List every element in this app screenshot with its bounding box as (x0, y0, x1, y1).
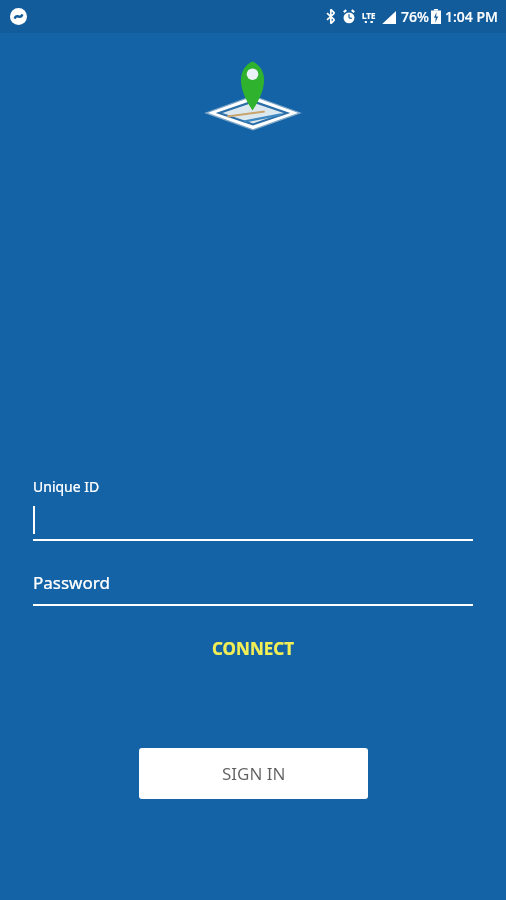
staticText: Unique ID (33, 477, 100, 496)
staticText: CONNECT (212, 637, 294, 660)
staticText: 76% (401, 7, 429, 26)
button[interactable] (33, 505, 473, 541)
staticText: SIGN IN (222, 762, 286, 785)
button[interactable]: CONNECT (198, 631, 308, 666)
button[interactable]: Password (33, 571, 473, 606)
staticText: Password (33, 571, 110, 594)
button[interactable]: SIGN IN (139, 748, 368, 799)
staticText: 1:04 PM (445, 7, 498, 26)
staticText: LTE (362, 10, 376, 21)
